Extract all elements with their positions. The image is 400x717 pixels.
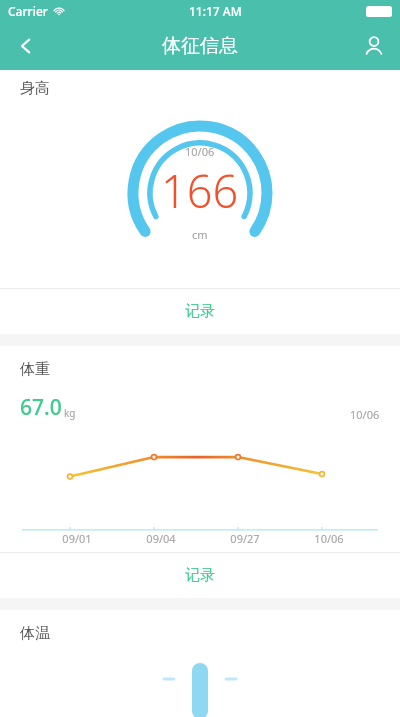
staticText: 身高 (20, 79, 50, 98)
staticText: 166 (161, 160, 239, 221)
staticText: 记录 (185, 566, 215, 585)
staticText: 10/06 (185, 144, 215, 159)
staticText: 体温 (20, 624, 50, 643)
staticText: 10/06 (350, 407, 380, 422)
staticText: 09/04 (146, 531, 176, 546)
staticText: 10/06 (314, 531, 344, 546)
button[interactable]: Profile (348, 22, 400, 70)
button[interactable]: 记录 (0, 289, 400, 334)
button[interactable]: 记录 (0, 553, 400, 598)
staticText: cm (192, 227, 208, 242)
staticText: 67.0 (20, 393, 62, 422)
staticText: 09/27 (230, 531, 260, 546)
staticText: 11:17 AM (189, 3, 242, 19)
staticText: kg (64, 406, 76, 420)
button[interactable]: Back (0, 22, 52, 70)
staticText: 体征信息 (162, 34, 238, 58)
staticText: 体重 (20, 360, 50, 379)
staticText: Carrier (8, 3, 48, 19)
staticText: 09/01 (62, 531, 92, 546)
staticText: 记录 (185, 302, 215, 321)
